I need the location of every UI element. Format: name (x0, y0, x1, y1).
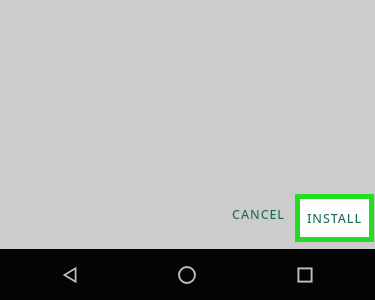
button[interactable]: Back (54, 259, 86, 291)
staticText: CANCEL (232, 206, 285, 223)
button[interactable]: Home (171, 259, 203, 291)
staticText: INSTALL (307, 210, 362, 227)
button[interactable]: CANCEL (224, 200, 293, 228)
button[interactable]: Recent apps (289, 259, 321, 291)
button[interactable]: INSTALL (295, 194, 374, 242)
